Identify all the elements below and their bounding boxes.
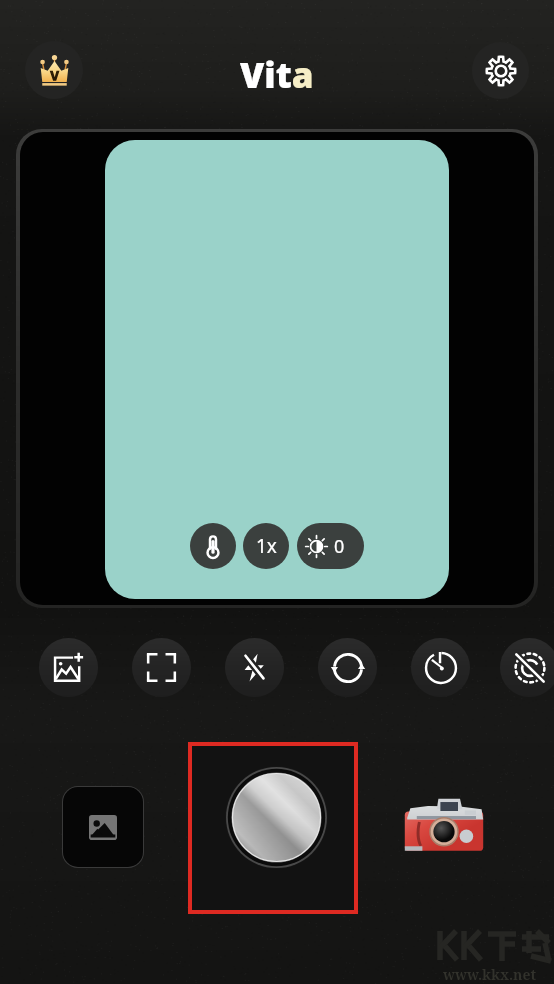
button[interactable]: Settings bbox=[472, 42, 529, 99]
staticText: 1x bbox=[256, 533, 277, 559]
button[interactable]: Temperature bbox=[190, 523, 236, 569]
button[interactable]: Add photo bbox=[39, 638, 98, 697]
button[interactable]: Gallery bbox=[63, 787, 143, 867]
button[interactable]: Filters off bbox=[500, 638, 554, 697]
button[interactable]: 0 bbox=[297, 523, 364, 569]
button[interactable]: Timer bbox=[411, 638, 470, 697]
staticText: www.kkx.net bbox=[443, 965, 537, 984]
button[interactable]: Pro bbox=[25, 41, 83, 99]
staticText: Vita bbox=[240, 51, 314, 99]
button[interactable]: Flash off bbox=[225, 638, 284, 697]
staticText: 0 bbox=[334, 534, 345, 559]
button[interactable]: Camera mode bbox=[404, 797, 484, 853]
button[interactable]: Shutter bbox=[192, 746, 354, 910]
button[interactable]: Aspect ratio bbox=[132, 638, 191, 697]
button[interactable]: 1x bbox=[243, 523, 289, 569]
button[interactable]: Switch camera bbox=[318, 638, 377, 697]
